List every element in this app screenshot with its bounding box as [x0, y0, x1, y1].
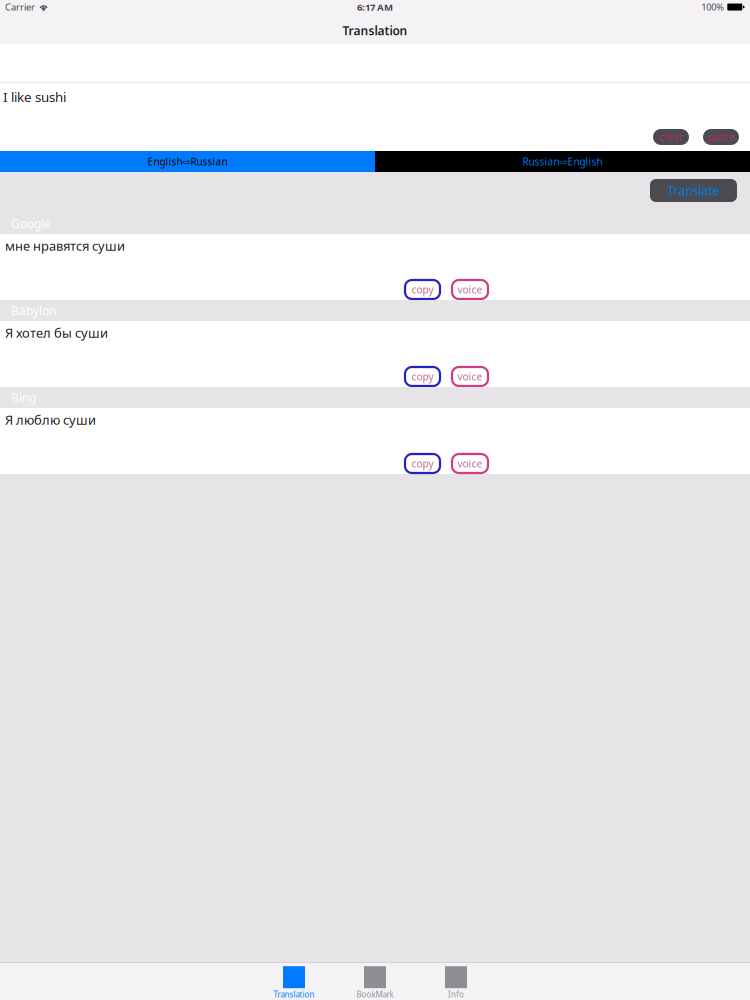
staticText: Info [448, 989, 464, 1000]
staticText: voice [457, 370, 482, 383]
staticText: Translation [342, 22, 407, 38]
staticText: Russian⇨English [522, 155, 602, 168]
button[interactable]: BookMark [334, 963, 415, 1000]
button[interactable]: copy [405, 454, 440, 473]
staticText: copy [411, 370, 433, 383]
button[interactable]: copy [405, 367, 440, 386]
staticText: Carrier [5, 1, 35, 13]
button[interactable]: clear [653, 129, 689, 145]
button[interactable]: Info [415, 963, 496, 1000]
staticText: BookMark [356, 989, 393, 1000]
staticText: Я люблю суши [5, 411, 96, 429]
staticText: Babylon [11, 302, 56, 318]
staticText: 6:17 AM [357, 0, 393, 14]
button[interactable]: voice [452, 367, 488, 386]
button[interactable]: Translate [650, 179, 737, 202]
staticText: clear [659, 130, 683, 144]
button[interactable]: Translation [253, 963, 334, 1000]
button[interactable]: Russian⇨English [375, 151, 750, 172]
staticText: I like sushi [3, 88, 66, 106]
button[interactable]: English⇨Russian [0, 151, 375, 172]
staticText: Bing [11, 389, 36, 405]
staticText: 100% [701, 1, 724, 13]
staticText: Я хотел бы суши [5, 324, 108, 342]
staticText: Google [11, 215, 51, 231]
staticText: paste [707, 130, 734, 144]
button[interactable]: voice [452, 280, 488, 299]
button[interactable]: paste [703, 129, 739, 145]
staticText: copy [411, 283, 433, 296]
staticText: voice [457, 283, 482, 296]
staticText: Translate [667, 182, 719, 198]
staticText: voice [457, 457, 482, 470]
button[interactable]: voice [452, 454, 488, 473]
staticText: English⇨Russian [147, 155, 227, 168]
staticText: Translation [273, 989, 314, 1000]
button[interactable]: copy [405, 280, 440, 299]
staticText: copy [411, 457, 433, 470]
staticText: мне нравятся суши [5, 237, 125, 255]
